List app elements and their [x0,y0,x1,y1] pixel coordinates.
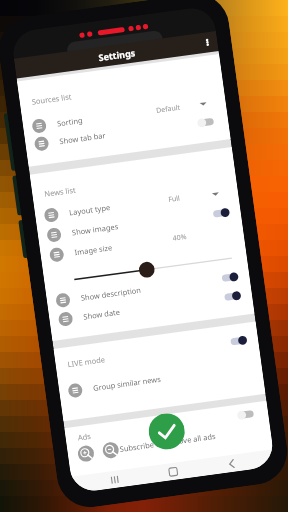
button[interactable]: Setting [55,292,71,308]
staticText: Show description [80,285,142,303]
button[interactable]: Confirm [146,411,187,452]
button[interactable]: Setting [34,136,49,152]
button[interactable]: Image size slider [43,247,248,292]
button[interactable]: Toggle [234,407,260,422]
button[interactable]: Toggle [224,333,250,349]
button[interactable]: Zoom out [102,441,120,459]
staticText: Group similar news [92,374,162,393]
button[interactable]: Setting [58,311,73,327]
staticText: Sources list [31,91,72,107]
button[interactable]: Setting [49,247,65,263]
button[interactable]: Toggle [216,270,241,285]
button[interactable]: Toggle [207,206,232,221]
staticText: Full [168,193,181,205]
staticText: Ads [77,431,91,442]
staticText: Layout type [68,202,111,218]
button[interactable]: More options [202,37,213,48]
button[interactable]: Setting [43,207,59,223]
button[interactable]: Choose Full [212,190,219,198]
staticText: Show date [83,307,121,322]
staticText: Image size [74,242,113,257]
staticText: 40% [172,232,187,244]
staticText: Sorting [56,115,83,128]
button[interactable]: Zoom in [77,445,95,463]
staticText: Subscribe to remove all ads [119,431,216,454]
staticText: Settings [98,46,136,63]
button[interactable]: Setting [46,227,62,243]
staticText: News list [44,184,77,199]
button[interactable]: Toggle [218,289,244,304]
staticText: Show tab bar [59,130,107,146]
button[interactable]: Choose Default [199,100,207,108]
button[interactable]: Toggle [194,115,220,130]
staticText: LIVE mode [67,354,106,369]
staticText: Show images [71,221,119,237]
staticText: Default [156,103,182,116]
button[interactable]: Setting [67,383,83,398]
button[interactable]: Setting [31,118,47,134]
